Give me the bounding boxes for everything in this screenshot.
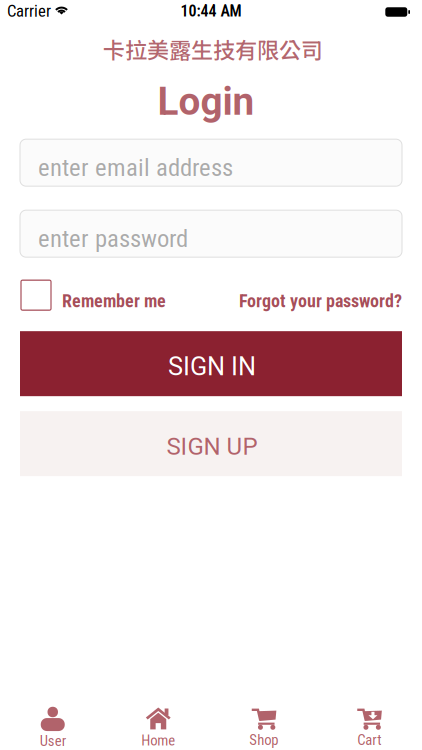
- button[interactable]: Cart: [316, 696, 422, 749]
- staticText: Home: [141, 732, 175, 749]
- button[interactable]: Forgot your password?: [239, 285, 402, 306]
- staticText: Forgot your password?: [239, 291, 402, 312]
- button[interactable]: SIGN IN: [20, 331, 402, 396]
- staticText: Cart: [357, 731, 381, 749]
- staticText: SIGN UP: [166, 433, 257, 461]
- button[interactable]: enter email address: [20, 139, 402, 186]
- button[interactable]: enter password: [20, 210, 402, 257]
- staticText: Carrier: [7, 1, 51, 21]
- staticText: enter password: [38, 224, 188, 253]
- button[interactable]: Home: [105, 696, 211, 749]
- staticText: User: [40, 732, 66, 750]
- button[interactable]: Remember me: [21, 280, 166, 310]
- staticText: Remember me: [62, 291, 166, 312]
- button[interactable]: Shop: [211, 696, 316, 749]
- button[interactable]: SIGN UP: [20, 411, 402, 476]
- staticText: 10:44 AM: [180, 2, 241, 20]
- button[interactable]: User: [0, 695, 105, 750]
- staticText: SIGN IN: [168, 352, 256, 381]
- staticText: 卡拉美露生技有限公司: [103, 33, 323, 65]
- staticText: Shop: [249, 731, 278, 749]
- staticText: Login: [157, 79, 254, 124]
- staticText: enter email address: [38, 153, 233, 182]
